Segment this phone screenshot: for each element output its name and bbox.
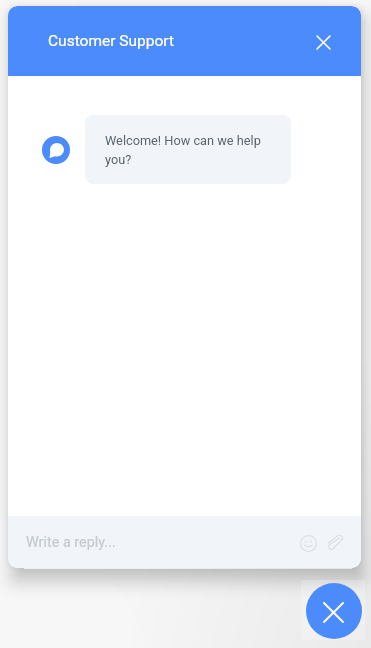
staticText: Welcome! How can we help you? <box>105 133 275 167</box>
button[interactable]: Emoji <box>295 529 322 556</box>
button[interactable]: Attach file <box>322 529 349 556</box>
staticText: Customer Support <box>48 32 174 50</box>
button[interactable]: Close <box>306 24 340 58</box>
staticText: Write a reply... <box>26 534 116 551</box>
button[interactable]: Close chat <box>306 583 362 639</box>
